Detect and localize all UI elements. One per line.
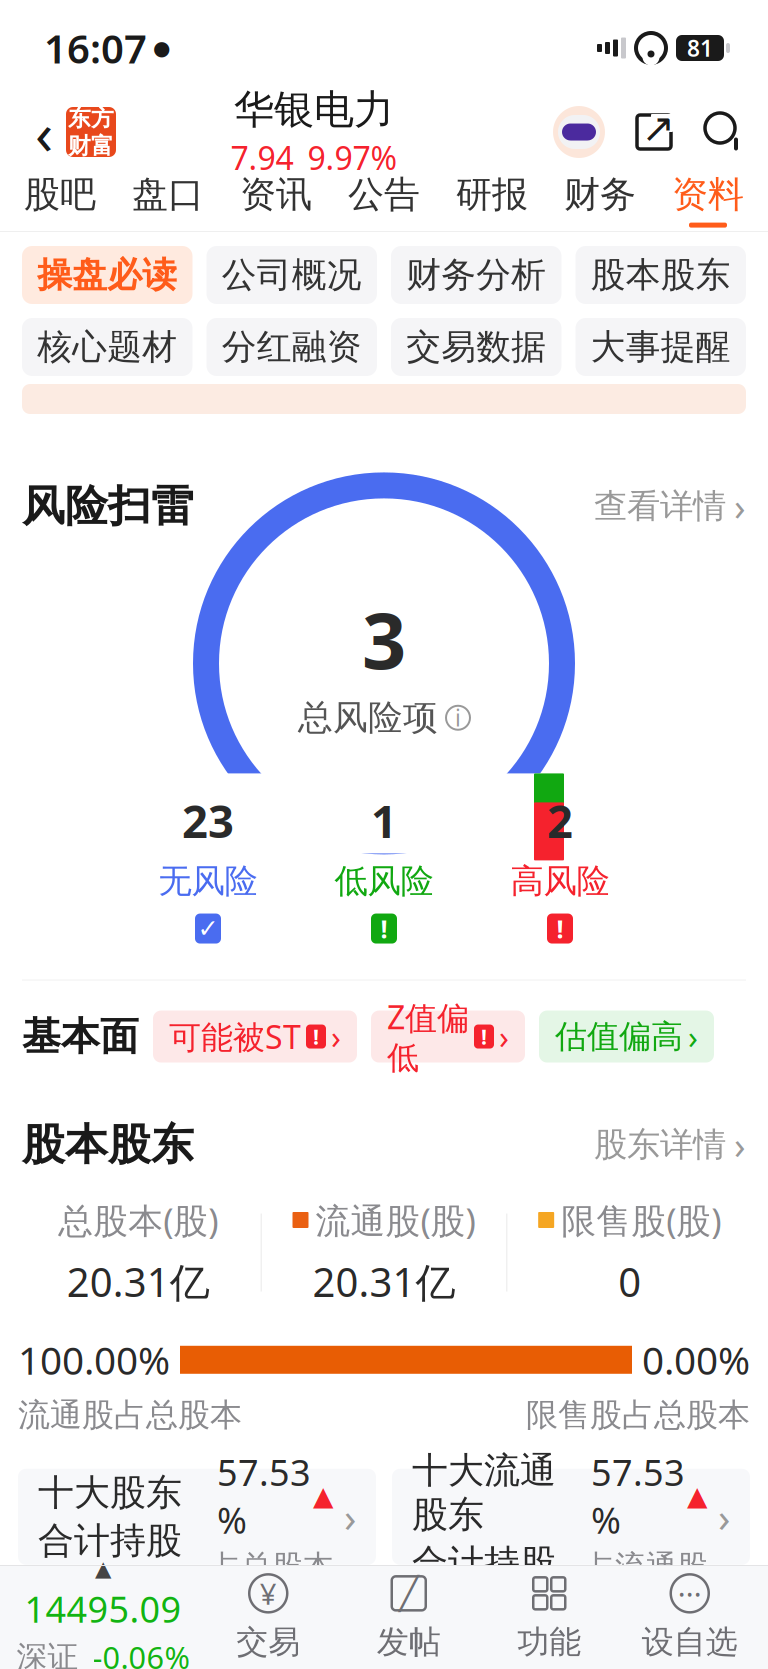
staticText: 股东人数 xyxy=(22,1575,182,1624)
button[interactable]: 研报 xyxy=(438,168,546,232)
button[interactable]: 盘口 xyxy=(114,168,222,232)
staticText: 57.53% xyxy=(591,1448,685,1544)
staticText: 无风险 xyxy=(158,861,257,901)
staticText: ! xyxy=(481,1022,487,1051)
staticText: 100.00% xyxy=(18,1334,170,1385)
staticText: 资料 xyxy=(672,172,744,217)
staticText: 公司概况 xyxy=(222,254,362,296)
staticText: 股东详情 xyxy=(594,1124,726,1165)
button[interactable]: 交易数据 xyxy=(391,318,561,376)
button[interactable]: 操盘必读 xyxy=(22,246,192,304)
staticText: 财富 xyxy=(68,132,114,160)
button[interactable]: 财务 xyxy=(546,168,654,232)
staticText: ! xyxy=(556,912,563,945)
button[interactable]: 十大流通股东 xyxy=(392,1469,750,1565)
staticText: 风险扫雷 xyxy=(22,480,194,532)
staticText: 基本面 xyxy=(22,1013,139,1060)
button[interactable]: ╱ xyxy=(338,1565,479,1669)
button[interactable]: ¥ xyxy=(198,1565,338,1669)
staticText: 23 xyxy=(182,790,234,851)
button[interactable]: 公司概况 xyxy=(206,246,377,304)
button[interactable]: 公告 xyxy=(330,168,438,232)
staticText: 16:07 xyxy=(44,21,147,74)
staticText: 20.31亿 xyxy=(67,1255,210,1308)
button[interactable]: Back xyxy=(22,104,66,160)
staticText: 核心题材 xyxy=(37,326,177,368)
button[interactable]: 资料 xyxy=(654,168,762,232)
staticText: i xyxy=(455,703,461,733)
staticText: 功能 xyxy=(517,1622,581,1662)
button[interactable]: 估值偏高 xyxy=(539,1010,714,1062)
staticText: 股本股东 xyxy=(591,254,731,296)
staticText: ▲ xyxy=(313,1481,334,1511)
button[interactable]: 股吧 xyxy=(6,168,114,232)
staticText: ╱ xyxy=(399,1575,418,1611)
staticText: 深证 xyxy=(16,1638,78,1669)
button[interactable]: 股东详情 xyxy=(594,1120,746,1170)
staticText: ! xyxy=(380,912,387,945)
button[interactable]: 查看详情 xyxy=(594,481,746,531)
staticText: 大事提醒 xyxy=(591,326,731,368)
staticText: 估值偏高 xyxy=(555,1017,683,1056)
button[interactable]: 核心题材 xyxy=(22,318,192,376)
button[interactable]: 深证指数 xyxy=(8,1565,198,1669)
button[interactable]: 股本股东 xyxy=(575,246,746,304)
staticText: 盘口 xyxy=(132,172,204,217)
staticText: › xyxy=(331,1015,341,1058)
button[interactable]: 十大股东 xyxy=(18,1469,376,1565)
button[interactable]: ··· xyxy=(619,1565,760,1669)
button[interactable]: Z值偏低 xyxy=(371,1010,525,1062)
staticText: 财务分析 xyxy=(406,254,546,296)
button[interactable]: 财务分析 xyxy=(391,246,561,304)
button[interactable]: 功能 xyxy=(479,1565,619,1669)
staticText: 十大流通股东 xyxy=(412,1448,556,1537)
staticText: › xyxy=(499,1015,509,1058)
button[interactable]: 分红融资 xyxy=(206,318,377,376)
staticText: 华银电力 xyxy=(234,85,394,134)
button[interactable]: Share xyxy=(632,110,676,154)
staticText: 东方 xyxy=(68,104,114,132)
staticText: 流通股(股) xyxy=(315,1197,475,1243)
staticText: ↗ xyxy=(641,105,675,151)
staticText: 总股本(股) xyxy=(58,1197,218,1243)
button[interactable]: 可能被ST xyxy=(153,1010,357,1062)
staticText: › xyxy=(344,1490,356,1543)
staticText: ··· xyxy=(678,1574,702,1613)
staticText: ‹ xyxy=(35,93,53,171)
staticText: Z值偏低 xyxy=(387,996,469,1078)
staticText: 0 xyxy=(618,1255,641,1308)
button[interactable]: AI 助手 xyxy=(552,105,606,159)
staticText: 占总股本 xyxy=(210,1548,334,1585)
staticText: 查看详情 xyxy=(594,486,726,527)
staticText: 高风险 xyxy=(510,861,609,901)
staticText: 交易 xyxy=(236,1622,300,1662)
button[interactable]: 资讯 xyxy=(222,168,330,232)
button[interactable]: Search xyxy=(702,110,746,154)
staticText: 流通股占总股本 xyxy=(18,1395,242,1435)
staticText: 限售股占总股本 xyxy=(526,1395,750,1435)
button[interactable]: 大事提醒 xyxy=(575,318,746,376)
staticText: 限售股(股) xyxy=(561,1197,721,1243)
staticText: ● xyxy=(153,37,170,59)
staticText: 3 xyxy=(362,588,406,690)
staticText: › xyxy=(688,1015,698,1058)
staticText: 资讯 xyxy=(240,172,312,217)
staticText: 交易数据 xyxy=(406,326,546,368)
staticText: 十大股东 xyxy=(38,1470,182,1515)
staticText: 1 xyxy=(371,790,397,851)
staticText: ¥ xyxy=(260,1574,277,1613)
staticText: 股吧 xyxy=(24,172,96,217)
staticText: › xyxy=(718,1490,730,1543)
staticText: 发帖 xyxy=(377,1622,441,1662)
staticText: 7.94 xyxy=(230,136,293,179)
staticText: 总风险项 xyxy=(298,696,438,739)
button[interactable]: 东方财富 xyxy=(66,107,116,157)
staticText: 合计持股 xyxy=(412,1541,556,1585)
staticText: ▲ xyxy=(95,1557,111,1581)
staticText: 股本股东 xyxy=(22,1118,194,1171)
staticText: 14495.09 xyxy=(24,1585,181,1633)
staticText: ✓ xyxy=(197,914,218,943)
staticText: › xyxy=(734,1120,746,1170)
staticText: 研报 xyxy=(456,172,528,217)
staticText: 占流通股 xyxy=(584,1548,708,1585)
